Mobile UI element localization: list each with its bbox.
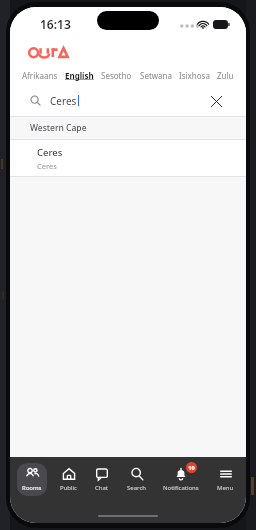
button[interactable]: English xyxy=(64,68,95,83)
button[interactable]: Setwana xyxy=(139,68,173,83)
button[interactable]: Chat xyxy=(90,463,114,496)
button[interactable]: Menu xyxy=(212,463,239,496)
button[interactable]: Clear search xyxy=(206,91,226,111)
staticText: Zulu xyxy=(217,70,234,81)
button[interactable]: Public xyxy=(55,463,83,496)
staticText: Search xyxy=(127,484,146,492)
other: Menu xyxy=(219,467,233,481)
other: Notifications xyxy=(174,467,188,481)
button[interactable]: Ceres xyxy=(10,85,246,116)
button[interactable]: Rooms xyxy=(17,463,47,496)
staticText: 16:13 xyxy=(40,16,71,32)
staticText: Ceres xyxy=(37,161,57,171)
other: Rooms xyxy=(25,467,39,481)
staticText: 10 xyxy=(188,464,195,471)
staticText: English xyxy=(65,70,94,81)
other: Chat xyxy=(95,467,109,481)
other: Public xyxy=(62,467,76,481)
staticText: Western Cape xyxy=(30,122,87,134)
button[interactable]: Zulu xyxy=(216,68,235,83)
button[interactable]: Afrikaans xyxy=(21,68,59,83)
staticText: Chat xyxy=(95,484,109,492)
other: Search xyxy=(130,467,144,481)
staticText: Rooms xyxy=(22,484,42,492)
staticText: Menu xyxy=(217,484,234,492)
button[interactable]: Ceres xyxy=(10,140,246,176)
staticText: Setwana xyxy=(140,70,172,81)
button[interactable]: Search xyxy=(122,463,151,496)
button[interactable]: Notifications xyxy=(158,463,204,496)
staticText: Ceres xyxy=(37,146,63,159)
staticText: Notifications xyxy=(163,484,199,492)
button[interactable]: Isixhosa xyxy=(178,68,211,83)
staticText: Sesotho xyxy=(101,70,132,81)
staticText: Isixhosa xyxy=(179,70,210,81)
button[interactable]: Sesotho xyxy=(100,68,133,83)
staticText: Afrikaans xyxy=(22,70,58,81)
staticText: Ceres xyxy=(50,94,77,108)
staticText: Public xyxy=(60,484,78,492)
